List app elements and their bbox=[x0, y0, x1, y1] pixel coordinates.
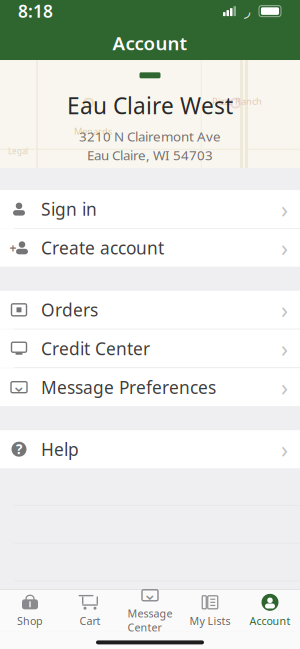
staticText: ⌄ bbox=[11, 376, 26, 396]
button[interactable]: Shop bbox=[0, 591, 60, 631]
button[interactable]: + bbox=[0, 229, 300, 267]
staticText: Legal bbox=[8, 146, 28, 156]
staticText: ◞ bbox=[244, 2, 250, 20]
button[interactable]: ? bbox=[0, 430, 300, 468]
button[interactable]: Sign in bbox=[0, 190, 300, 228]
button[interactable]: Orders bbox=[0, 291, 300, 329]
staticText: Create account bbox=[41, 236, 164, 259]
staticText: › bbox=[281, 233, 288, 263]
staticText: Eau Claire, WI 54703 bbox=[87, 146, 213, 164]
staticText: ? bbox=[16, 440, 22, 458]
staticText: Account bbox=[249, 614, 290, 628]
staticText: My Lists bbox=[189, 614, 230, 628]
staticText: › bbox=[281, 194, 288, 224]
button[interactable]: My Lists bbox=[180, 591, 240, 631]
staticText: Cart bbox=[79, 614, 100, 628]
button[interactable]: Credit Center bbox=[0, 329, 300, 367]
button[interactable]: ⌄ bbox=[0, 368, 300, 406]
staticText: Pizza Ranch bbox=[212, 95, 262, 107]
staticText: + bbox=[9, 240, 16, 256]
staticText: Orders bbox=[41, 298, 98, 321]
staticText: › bbox=[281, 434, 288, 464]
button[interactable]: Cart bbox=[60, 591, 120, 631]
staticText: Eau Claire West bbox=[67, 90, 233, 120]
staticText: Help bbox=[41, 438, 79, 461]
button[interactable]: Account bbox=[240, 591, 300, 631]
staticText: › bbox=[281, 333, 288, 363]
button[interactable]: ⌄ bbox=[120, 591, 180, 631]
staticText: 8:18 bbox=[18, 0, 53, 23]
staticText: Message Preferences bbox=[41, 376, 216, 399]
staticText: › bbox=[281, 372, 288, 402]
staticText: 3210 N Clairemont Ave bbox=[79, 127, 221, 145]
staticText: ⌄ bbox=[142, 584, 157, 604]
staticText: Account bbox=[112, 31, 187, 55]
staticText: Menards bbox=[74, 125, 112, 137]
staticText: › bbox=[281, 295, 288, 325]
staticText: Sign in bbox=[41, 198, 97, 221]
staticText: Shop bbox=[17, 614, 43, 628]
staticText: Credit Center bbox=[41, 337, 150, 360]
staticText: Message Center bbox=[127, 606, 172, 634]
